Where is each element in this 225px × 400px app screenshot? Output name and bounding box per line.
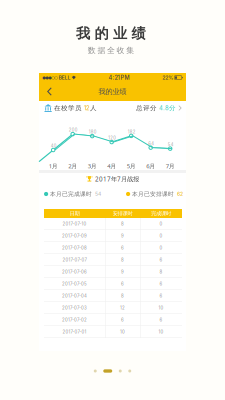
staticText: 2017-07-06	[62, 269, 87, 275]
staticText: 全	[107, 45, 115, 55]
staticText: 安排课时	[112, 210, 132, 217]
staticText: 完成课时	[151, 210, 171, 217]
staticText: 54	[168, 142, 174, 147]
staticText: 7月	[166, 162, 175, 170]
staticText: 我的业绩	[98, 87, 126, 96]
staticText: 绩	[131, 25, 145, 42]
staticText: 2017-07-03	[62, 305, 87, 311]
staticText: 12	[82, 104, 90, 112]
staticText: 180	[89, 130, 97, 135]
staticText: 6	[159, 293, 162, 299]
staticText: 的	[94, 25, 108, 42]
staticText: 6	[121, 245, 124, 251]
staticText: 2017年7月战报	[95, 175, 139, 183]
staticText: 62	[177, 191, 183, 197]
button[interactable]: Back	[41, 83, 57, 99]
staticText: 据	[97, 45, 105, 55]
staticText: 4.8	[157, 104, 169, 112]
staticText: 200	[69, 128, 78, 133]
staticText: 40	[51, 143, 57, 148]
staticText: 10	[158, 305, 163, 311]
staticText: 4:21 PM	[108, 74, 129, 81]
staticText: 数	[88, 45, 96, 55]
staticText: 8	[121, 257, 124, 263]
staticText: 2017-07-04	[62, 293, 87, 299]
staticText: 2017-07-07	[62, 257, 86, 263]
staticText: 8	[121, 293, 124, 299]
staticText: 集	[126, 45, 134, 55]
staticText: 5月	[127, 162, 136, 170]
staticText: ●●●	[42, 75, 51, 80]
staticText: 人	[90, 104, 97, 112]
staticText: 6	[159, 257, 162, 263]
staticText: 2017-07-01	[62, 329, 86, 335]
staticText: 10	[120, 329, 125, 335]
staticText: 8	[121, 221, 124, 227]
staticText: 10	[158, 329, 163, 335]
staticText: 4月	[107, 162, 116, 170]
staticText: ○○	[51, 75, 57, 80]
staticText: 3月	[88, 162, 97, 170]
staticText: 收	[117, 45, 125, 55]
staticText: 6	[121, 317, 124, 323]
staticText: 2017-07-09	[62, 233, 87, 239]
staticText: 54	[95, 191, 101, 197]
staticText: 分	[169, 104, 176, 112]
staticText: 6	[159, 281, 162, 287]
staticText: 2017-07-08	[62, 245, 87, 251]
staticText: BELL	[58, 74, 70, 81]
staticText: 22%	[162, 74, 173, 81]
staticText: 64	[148, 141, 154, 146]
staticText: 0	[159, 245, 162, 251]
staticText: 120	[108, 136, 116, 141]
staticText: 9	[121, 269, 124, 275]
staticText: 本月已安排课时	[132, 190, 174, 198]
staticText: 6	[159, 317, 162, 323]
staticText: 182	[128, 129, 136, 134]
staticText: 2017-07-05	[62, 281, 87, 287]
staticText: 6	[121, 281, 124, 287]
staticText: 9	[121, 233, 124, 239]
staticText: 在校学员	[54, 104, 82, 112]
staticText: 业	[113, 25, 127, 42]
staticText: 6月	[146, 162, 155, 170]
staticText: 2月	[68, 162, 77, 170]
staticText: 0	[159, 233, 162, 239]
staticText: 2017-07-02	[62, 317, 87, 323]
staticText: 0	[159, 221, 162, 227]
staticText: 我	[76, 25, 90, 42]
staticText: 总评分	[136, 104, 157, 112]
staticText: 8	[159, 269, 162, 275]
staticText: 2017-07-10	[62, 221, 86, 227]
button[interactable]: 总评分	[136, 104, 181, 112]
staticText: 本月已完成课时	[50, 190, 92, 198]
staticText: 日期	[69, 210, 79, 217]
staticText: 1月	[49, 162, 58, 170]
staticText: 12	[120, 305, 125, 311]
